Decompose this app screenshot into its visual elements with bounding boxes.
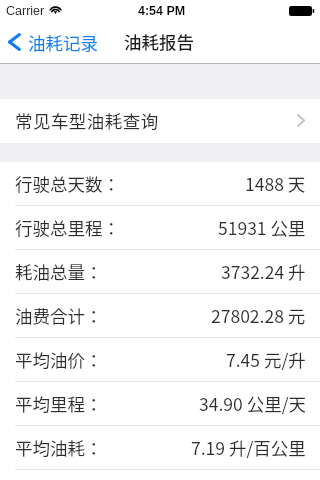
staticText: 油耗报告 — [124, 29, 194, 54]
other: Wi-Fi — [49, 4, 62, 14]
staticText: 平均油耗： — [15, 435, 103, 460]
button[interactable]: 平均油耗： — [0, 426, 320, 470]
staticText: 常见车型油耗查询 — [15, 108, 159, 133]
staticText: 油耗记录 — [28, 30, 98, 55]
staticText: 行驶总里程： — [15, 215, 120, 240]
button[interactable]: 油耗记录 — [0, 20, 106, 64]
staticText: 7.19 升/百公里 — [191, 435, 306, 460]
staticText: 平均油价： — [15, 347, 103, 372]
button[interactable]: 平均油价： — [0, 338, 320, 382]
staticText: 4:54 PM — [138, 4, 186, 18]
staticText: 27802.28 元 — [211, 303, 306, 328]
staticText: 油费合计： — [15, 303, 103, 328]
button[interactable]: 油费合计： — [0, 294, 320, 338]
staticText: 1488 天 — [245, 171, 306, 196]
button[interactable]: 常见车型油耗查询 — [0, 99, 320, 143]
staticText: 3732.24 升 — [221, 259, 306, 284]
staticText: 51931 公里 — [218, 215, 306, 240]
button[interactable]: 行驶总天数： — [0, 162, 320, 206]
staticText: 平均里程： — [15, 391, 103, 416]
button[interactable]: 平均里程： — [0, 382, 320, 426]
staticText: Carrier — [6, 4, 45, 18]
staticText: 34.90 公里/天 — [199, 391, 306, 416]
other: More — [295, 111, 307, 129]
other: Battery full — [289, 6, 314, 16]
staticText: 耗油总量： — [15, 259, 103, 284]
staticText: 7.45 元/升 — [226, 347, 306, 372]
button[interactable]: 行驶总里程： — [0, 206, 320, 250]
button[interactable]: 耗油总量： — [0, 250, 320, 294]
staticText: 行驶总天数： — [15, 171, 120, 196]
